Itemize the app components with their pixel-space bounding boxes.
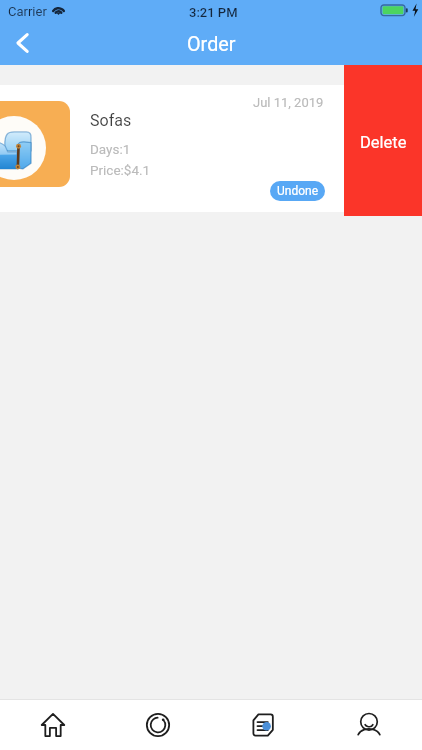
- button[interactable]: Undone: [270, 181, 325, 201]
- button[interactable]: Home: [0, 700, 105, 750]
- button[interactable]: Sofas: [0, 85, 344, 212]
- staticText: 3:21 PM: [189, 5, 238, 20]
- staticText: Delete: [360, 133, 407, 152]
- staticText: Price:$4.1: [90, 162, 151, 178]
- staticText: Undone: [277, 184, 319, 198]
- button[interactable]: Profile: [316, 700, 422, 750]
- staticText: Carrier: [8, 4, 47, 19]
- button[interactable]: Discover: [105, 700, 210, 750]
- button[interactable]: Delete: [344, 65, 422, 216]
- button[interactable]: Orders: [210, 700, 316, 750]
- button[interactable]: Back: [0, 24, 46, 65]
- staticText: Sofas: [90, 111, 132, 130]
- staticText: Order: [187, 33, 236, 56]
- staticText: Days:1: [90, 141, 131, 157]
- staticText: Jul 11, 2019: [253, 95, 324, 110]
